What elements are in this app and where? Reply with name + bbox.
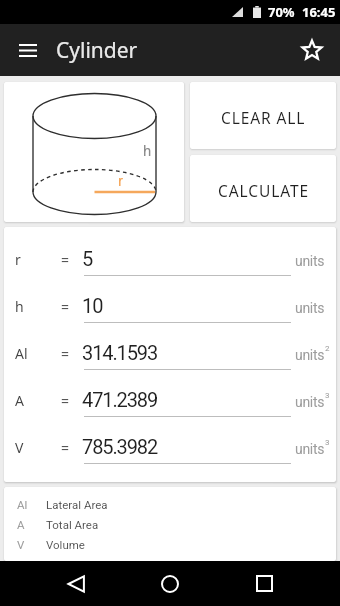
staticText: 785.3982 [82, 435, 158, 458]
button[interactable]: Menu [8, 30, 48, 70]
staticText: A [15, 391, 24, 410]
staticText: CALCULATE [218, 180, 309, 201]
staticText: Al [15, 344, 28, 363]
staticText: units [295, 347, 325, 363]
button[interactable]: A [4, 385, 336, 432]
staticText: = [61, 344, 70, 363]
staticText: = [61, 250, 70, 269]
button[interactable]: V [4, 432, 336, 479]
button[interactable]: Al [4, 338, 336, 385]
staticText: h [143, 142, 152, 160]
staticText: A [17, 518, 25, 531]
staticText: h [15, 297, 24, 316]
staticText: Volume [46, 538, 85, 551]
staticText: 16:45 [302, 3, 336, 21]
staticText: r [118, 172, 124, 190]
button[interactable]: h [4, 291, 336, 338]
button[interactable]: Back [52, 561, 100, 606]
staticText: units [295, 394, 325, 410]
staticText: = [61, 438, 70, 457]
button[interactable]: Home [146, 561, 194, 606]
staticText: Al [17, 498, 28, 511]
staticText: 10 [82, 294, 103, 317]
staticText: 3 [325, 391, 330, 400]
staticText: 5 [82, 247, 93, 270]
staticText: V [17, 538, 25, 551]
staticText: = [61, 297, 70, 316]
staticText: = [61, 391, 70, 410]
staticText: Cylinder [56, 36, 138, 65]
staticText: units [295, 253, 325, 269]
staticText: V [15, 438, 24, 457]
staticText: 2 [325, 344, 330, 353]
staticText: Lateral Area [46, 498, 108, 511]
staticText: 471.2389 [82, 388, 158, 411]
staticText: r [15, 250, 21, 269]
staticText: units [295, 441, 325, 457]
staticText: 3 [325, 438, 330, 447]
staticText: units [295, 300, 325, 316]
staticText: 314.1593 [82, 341, 158, 364]
button[interactable]: r [4, 244, 336, 291]
staticText: CLEAR ALL [221, 107, 306, 128]
staticText: 70% [268, 3, 295, 21]
button[interactable]: CALCULATE [190, 155, 336, 222]
button[interactable]: Favorite [292, 30, 332, 70]
button[interactable]: Recents [240, 561, 288, 606]
staticText: Total Area [46, 518, 99, 531]
button[interactable]: CLEAR ALL [190, 82, 336, 149]
